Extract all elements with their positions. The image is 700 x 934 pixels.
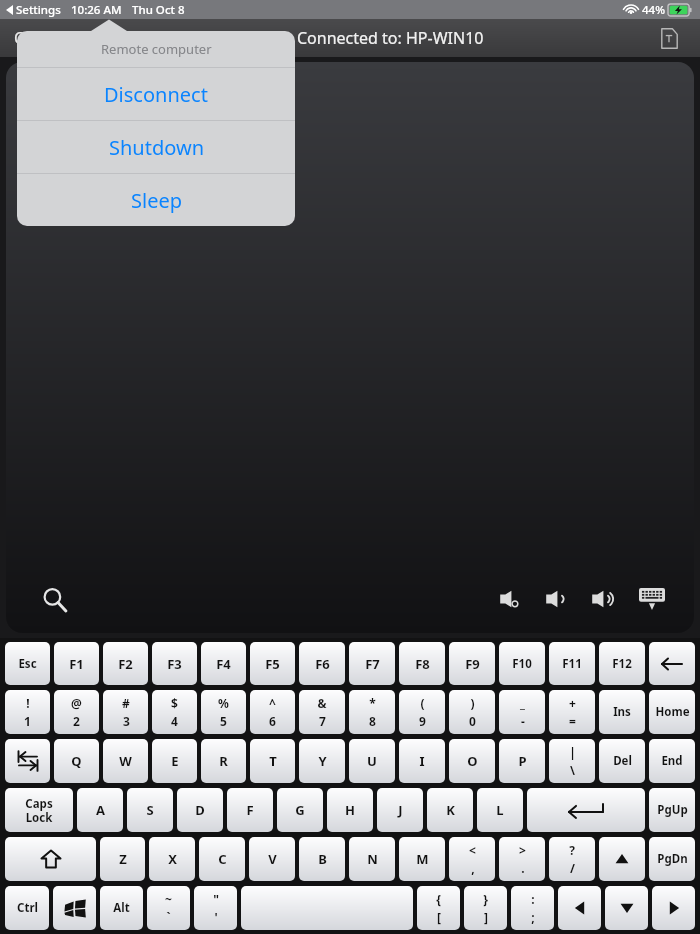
button[interactable]: F10 bbox=[499, 642, 545, 685]
button[interactable]: } bbox=[464, 886, 507, 930]
button[interactable]: O bbox=[449, 739, 495, 783]
button[interactable]: Ins bbox=[599, 690, 645, 734]
button[interactable]: F bbox=[227, 788, 273, 832]
button[interactable]: # bbox=[103, 690, 148, 734]
button[interactable]: Connect bbox=[14, 27, 77, 49]
button[interactable]: Disconnect bbox=[17, 68, 295, 120]
button[interactable]: F11 bbox=[549, 642, 595, 685]
button[interactable]: L bbox=[477, 788, 523, 832]
button[interactable]: P bbox=[499, 739, 545, 783]
button[interactable]: ( bbox=[399, 690, 445, 734]
button[interactable]: F8 bbox=[399, 642, 445, 685]
staticText: Caps Lock bbox=[25, 796, 53, 825]
button[interactable]: Hide keyboard bbox=[632, 579, 672, 619]
button[interactable]: H bbox=[327, 788, 373, 832]
button[interactable]: % bbox=[201, 690, 246, 734]
button[interactable]: D bbox=[177, 788, 223, 832]
button[interactable]: E bbox=[152, 739, 197, 783]
button[interactable]: N bbox=[349, 837, 395, 881]
button[interactable]: down bbox=[605, 886, 648, 930]
button[interactable]: Volume up bbox=[586, 579, 626, 619]
button[interactable]: A bbox=[77, 788, 123, 832]
button[interactable]: ? bbox=[549, 837, 595, 881]
button[interactable]: Q bbox=[54, 739, 99, 783]
button[interactable]: win bbox=[53, 886, 96, 930]
button[interactable]: I bbox=[399, 739, 445, 783]
staticText: ~ bbox=[165, 891, 172, 907]
staticText: N bbox=[367, 850, 378, 868]
button[interactable]: Zoom bbox=[36, 581, 74, 619]
button[interactable]: F12 bbox=[599, 642, 645, 685]
button[interactable]: F3 bbox=[152, 642, 197, 685]
button[interactable]: < bbox=[449, 837, 495, 881]
button[interactable] bbox=[6, 62, 694, 633]
button[interactable]: F9 bbox=[449, 642, 495, 685]
button[interactable]: { bbox=[417, 886, 460, 930]
button[interactable]: F6 bbox=[299, 642, 345, 685]
button[interactable]: End bbox=[649, 739, 695, 783]
button[interactable]: left bbox=[558, 886, 601, 930]
button[interactable]: K bbox=[427, 788, 473, 832]
button[interactable]: Ctrl bbox=[5, 886, 49, 930]
button[interactable]: Power bbox=[93, 21, 127, 55]
button[interactable]: J bbox=[377, 788, 423, 832]
button[interactable]: & bbox=[299, 690, 345, 734]
button[interactable]: Text file bbox=[654, 23, 684, 53]
button[interactable]: ) bbox=[449, 690, 495, 734]
button[interactable]: R bbox=[201, 739, 246, 783]
button[interactable]: ! bbox=[5, 690, 50, 734]
button[interactable]: up bbox=[599, 837, 645, 881]
button[interactable]: ^ bbox=[250, 690, 295, 734]
button[interactable]: Caps Lock bbox=[5, 788, 73, 832]
button[interactable]: F7 bbox=[349, 642, 395, 685]
button[interactable]: B bbox=[299, 837, 345, 881]
staticText: 2 bbox=[73, 713, 80, 729]
button[interactable]: G bbox=[277, 788, 323, 832]
button[interactable]: Mute bbox=[494, 579, 534, 619]
button[interactable]: Z bbox=[100, 837, 145, 881]
button[interactable]: + bbox=[549, 690, 595, 734]
button[interactable]: enter bbox=[527, 788, 645, 832]
staticText: M bbox=[416, 850, 429, 868]
button[interactable]: S bbox=[127, 788, 173, 832]
button[interactable]: @ bbox=[54, 690, 99, 734]
button[interactable]: Home bbox=[649, 690, 695, 734]
button[interactable]: F4 bbox=[201, 642, 246, 685]
button[interactable]: : bbox=[511, 886, 554, 930]
button[interactable]: V bbox=[249, 837, 295, 881]
button[interactable]: ~ bbox=[147, 886, 190, 930]
button[interactable]: " bbox=[194, 886, 237, 930]
button[interactable]: W bbox=[103, 739, 148, 783]
button[interactable]: > bbox=[499, 837, 545, 881]
button[interactable]: right bbox=[652, 886, 695, 930]
staticText: _ bbox=[520, 695, 525, 711]
button[interactable]: Shutdown bbox=[17, 121, 295, 173]
button[interactable]: F1 bbox=[54, 642, 99, 685]
button[interactable]: Sleep bbox=[17, 174, 295, 226]
button[interactable]: bksp bbox=[649, 642, 695, 685]
button[interactable] bbox=[241, 886, 413, 930]
staticText: Esc bbox=[18, 656, 37, 672]
button[interactable]: T bbox=[250, 739, 295, 783]
button[interactable]: tab bbox=[5, 739, 50, 783]
button[interactable]: _ bbox=[499, 690, 545, 734]
button[interactable]: U bbox=[349, 739, 395, 783]
button[interactable]: * bbox=[349, 690, 395, 734]
button[interactable]: PgDn bbox=[649, 837, 695, 881]
button[interactable]: Esc bbox=[5, 642, 50, 685]
button[interactable]: Alt bbox=[100, 886, 143, 930]
staticText: \ bbox=[570, 762, 575, 778]
button[interactable]: X bbox=[149, 837, 195, 881]
staticText: ' bbox=[214, 909, 218, 925]
button[interactable]: shift bbox=[5, 837, 96, 881]
button[interactable]: Y bbox=[299, 739, 345, 783]
button[interactable]: F5 bbox=[250, 642, 295, 685]
button[interactable]: F2 bbox=[103, 642, 148, 685]
button[interactable]: Del bbox=[599, 739, 645, 783]
button[interactable]: C bbox=[199, 837, 245, 881]
button[interactable]: PgUp bbox=[649, 788, 695, 832]
button[interactable]: | bbox=[549, 739, 595, 783]
button[interactable]: M bbox=[399, 837, 445, 881]
button[interactable]: $ bbox=[152, 690, 197, 734]
button[interactable]: Volume down bbox=[540, 579, 580, 619]
